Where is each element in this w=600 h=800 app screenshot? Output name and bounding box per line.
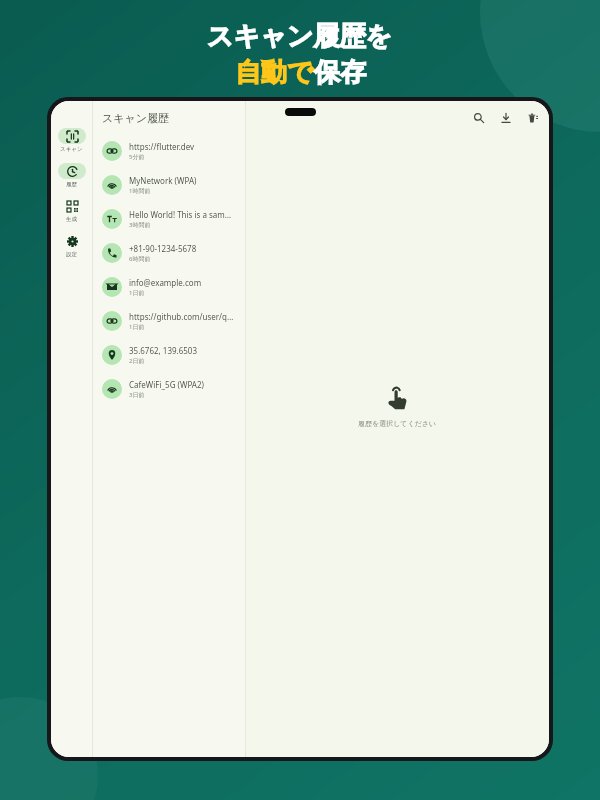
staticText: スキャン: [60, 146, 83, 153]
staticText: CafeWiFi_5G (WPA2): [129, 379, 204, 390]
button[interactable]: 生成: [51, 198, 92, 233]
staticText: 履歴を選択してください: [358, 419, 437, 428]
button[interactable]: info@example.com: [93, 270, 245, 304]
staticText: 生成: [66, 216, 77, 223]
button[interactable]: +81-90-1234-5678: [93, 236, 245, 270]
button[interactable]: Download: [498, 110, 514, 126]
button[interactable]: Delete: [525, 110, 541, 126]
staticText: 3時間前: [129, 221, 151, 229]
staticText: 保存: [314, 56, 366, 89]
staticText: 6時間前: [129, 255, 151, 263]
button[interactable]: 設定: [51, 233, 92, 268]
staticText: 設定: [66, 251, 77, 258]
staticText: https://github.com/user/q…: [129, 311, 234, 322]
button[interactable]: スキャン: [51, 128, 92, 163]
button[interactable]: CafeWiFi_5G (WPA2): [93, 372, 245, 406]
staticText: スキャン履歴: [102, 111, 170, 125]
button[interactable]: https://flutter.dev: [93, 134, 245, 168]
staticText: スキャン履歴を: [207, 20, 393, 53]
staticText: 35.6762, 139.6503: [129, 345, 197, 356]
button[interactable]: https://github.com/user/q…: [93, 304, 245, 338]
staticText: 5分前: [129, 153, 145, 161]
staticText: https://flutter.dev: [129, 141, 195, 152]
staticText: 3日前: [129, 391, 145, 399]
staticText: 履歴: [66, 181, 77, 188]
staticText: MyNetwork (WPA): [129, 175, 197, 186]
button[interactable]: Search: [471, 110, 487, 126]
staticText: 自動: [235, 56, 287, 89]
staticText: で: [287, 56, 314, 89]
staticText: 2日前: [129, 357, 145, 365]
button[interactable]: MyNetwork (WPA): [93, 168, 245, 202]
staticText: +81-90-1234-5678: [129, 243, 197, 254]
staticText: 1時間前: [129, 187, 151, 195]
staticText: Hello World! This is a sam…: [129, 209, 232, 220]
button[interactable]: 履歴: [51, 163, 92, 198]
staticText: 1日前: [129, 289, 145, 297]
button[interactable]: 35.6762, 139.6503: [93, 338, 245, 372]
button[interactable]: Hello World! This is a sam…: [93, 202, 245, 236]
staticText: info@example.com: [129, 277, 202, 288]
staticText: 1日前: [129, 323, 145, 331]
